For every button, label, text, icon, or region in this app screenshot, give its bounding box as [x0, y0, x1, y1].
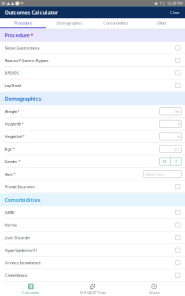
button[interactable]: About — [123, 283, 185, 296]
staticText: ✉ — [20, 1, 23, 5]
staticText: Comorbidities — [4, 196, 40, 203]
staticText: Clear — [170, 10, 180, 15]
staticText: Hyperlipidemia (?) — [4, 247, 36, 253]
staticText: BPD/DS — [4, 70, 18, 76]
button[interactable]: Comorbidities — [92, 18, 139, 29]
button[interactable]: in — [159, 133, 181, 140]
staticText: Calculator — [22, 290, 40, 295]
staticText: Demographics — [56, 20, 82, 25]
staticText: MBSAQIP Data — [79, 290, 105, 295]
staticText: Comorbidities — [103, 20, 128, 25]
button[interactable]: Clear — [170, 6, 185, 18]
staticText: Outcomes Calculator — [4, 9, 57, 16]
staticText: * — [21, 134, 24, 139]
staticText: Lap Band — [4, 83, 20, 88]
staticText: Private Insurance — [4, 184, 34, 189]
button[interactable]: Lap Band — [0, 80, 185, 92]
staticText: Race — [4, 171, 12, 177]
button[interactable]: Procedure — [0, 18, 46, 29]
staticText: Gender — [4, 159, 17, 164]
button[interactable]: Demographics — [46, 18, 92, 29]
button[interactable]: F — [171, 158, 181, 165]
button[interactable]: Hyperlipidemia (?) — [0, 244, 185, 257]
staticText: Urinary Incontinence — [4, 260, 40, 265]
staticText: Liver Disorder — [4, 235, 30, 240]
staticText: * — [20, 121, 23, 126]
staticText: GERD — [4, 210, 14, 215]
staticText: * — [12, 171, 15, 177]
staticText: M — [163, 159, 167, 164]
button[interactable]: Select race — [143, 170, 181, 178]
staticText: Hernia — [4, 222, 16, 228]
staticText: * — [11, 146, 14, 152]
staticText: ◀ ↑↓ 12:38 PM — [154, 0, 183, 6]
staticText: ft — [178, 121, 180, 126]
staticText: Height (in) — [4, 134, 21, 139]
staticText: ▲ — [7, 1, 10, 5]
button[interactable]: M — [160, 158, 170, 165]
button[interactable]: Private Insurance — [0, 181, 185, 193]
staticText: ⬤ — [15, 1, 19, 5]
button[interactable]: Urinary Incontinence — [0, 257, 185, 269]
staticText: Demographics — [4, 95, 41, 102]
button[interactable]: Other — [139, 18, 185, 29]
staticText: Height (ft) — [4, 121, 20, 126]
button[interactable]: Calculator — [0, 283, 62, 296]
staticText: ▤ — [1, 1, 5, 5]
button[interactable]: Sleeve Gastrectomy — [0, 42, 185, 54]
button[interactable]: Liver Disorder — [0, 232, 185, 244]
staticText: * — [16, 109, 19, 114]
staticText: Other — [157, 20, 167, 25]
button[interactable]: ft — [159, 120, 181, 128]
staticText: Select race — [145, 171, 164, 177]
staticText: Age — [4, 146, 11, 152]
staticText: in — [177, 134, 180, 139]
button[interactable]: GERD — [0, 207, 185, 219]
button[interactable]: lbs — [159, 108, 181, 115]
staticText: F — [175, 159, 177, 164]
button[interactable]: Hernia — [0, 219, 185, 232]
staticText: ▲ — [11, 1, 14, 5]
button[interactable]: MBSAQIP Data — [62, 283, 123, 296]
staticText: Roux-en-Y Gastric Bypass — [4, 58, 48, 63]
button[interactable]: BPD/DS — [0, 67, 185, 80]
staticText: * — [29, 32, 33, 39]
button[interactable]: yrs — [159, 145, 181, 153]
staticText: yrs — [174, 146, 180, 152]
staticText: lbs — [175, 109, 180, 114]
button[interactable]: Roux-en-Y Gastric Bypass — [0, 54, 185, 67]
staticText: * — [17, 159, 20, 164]
staticText: Procedure — [14, 20, 32, 25]
staticText: Weight — [4, 109, 16, 114]
staticText: Procedure — [4, 32, 29, 39]
staticText: Cholelithiasis — [4, 273, 27, 278]
staticText: Sleeve Gastrectomy — [4, 45, 39, 50]
staticText: About — [149, 290, 159, 295]
button[interactable]: Cholelithiasis — [0, 269, 185, 282]
